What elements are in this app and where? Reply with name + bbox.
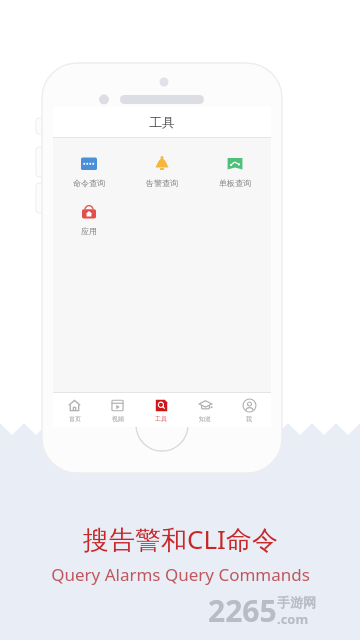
button[interactable]: 知道 [183,393,227,427]
staticText: 搜告警和CLI命令 [83,521,278,557]
staticText: 视频 [112,415,124,423]
staticText: 首页 [69,415,81,423]
staticText: 命令查询 [73,178,105,188]
staticText: .com [277,610,309,628]
staticText: 工具 [149,114,175,130]
staticText: 告警查询 [146,178,178,188]
staticText: 知道 [199,415,211,423]
staticText: 单板查询 [219,178,251,188]
button[interactable]: 单板查询 [198,152,271,190]
staticText: 工具 [155,415,167,423]
button[interactable]: 首页 [53,393,96,427]
button[interactable]: 命令查询 [53,152,125,190]
button[interactable]: 应用 [53,200,125,238]
button[interactable]: 我 [227,393,271,427]
staticText: Query Alarms Query Commands [51,563,310,586]
staticText: 手游网 [277,594,316,610]
staticText: 2265 [208,590,277,631]
button[interactable]: 视频 [96,393,139,427]
staticText: 我 [246,415,252,423]
button[interactable]: 告警查询 [125,152,198,190]
staticText: 应用 [81,226,97,236]
button[interactable]: 工具 [139,393,183,427]
